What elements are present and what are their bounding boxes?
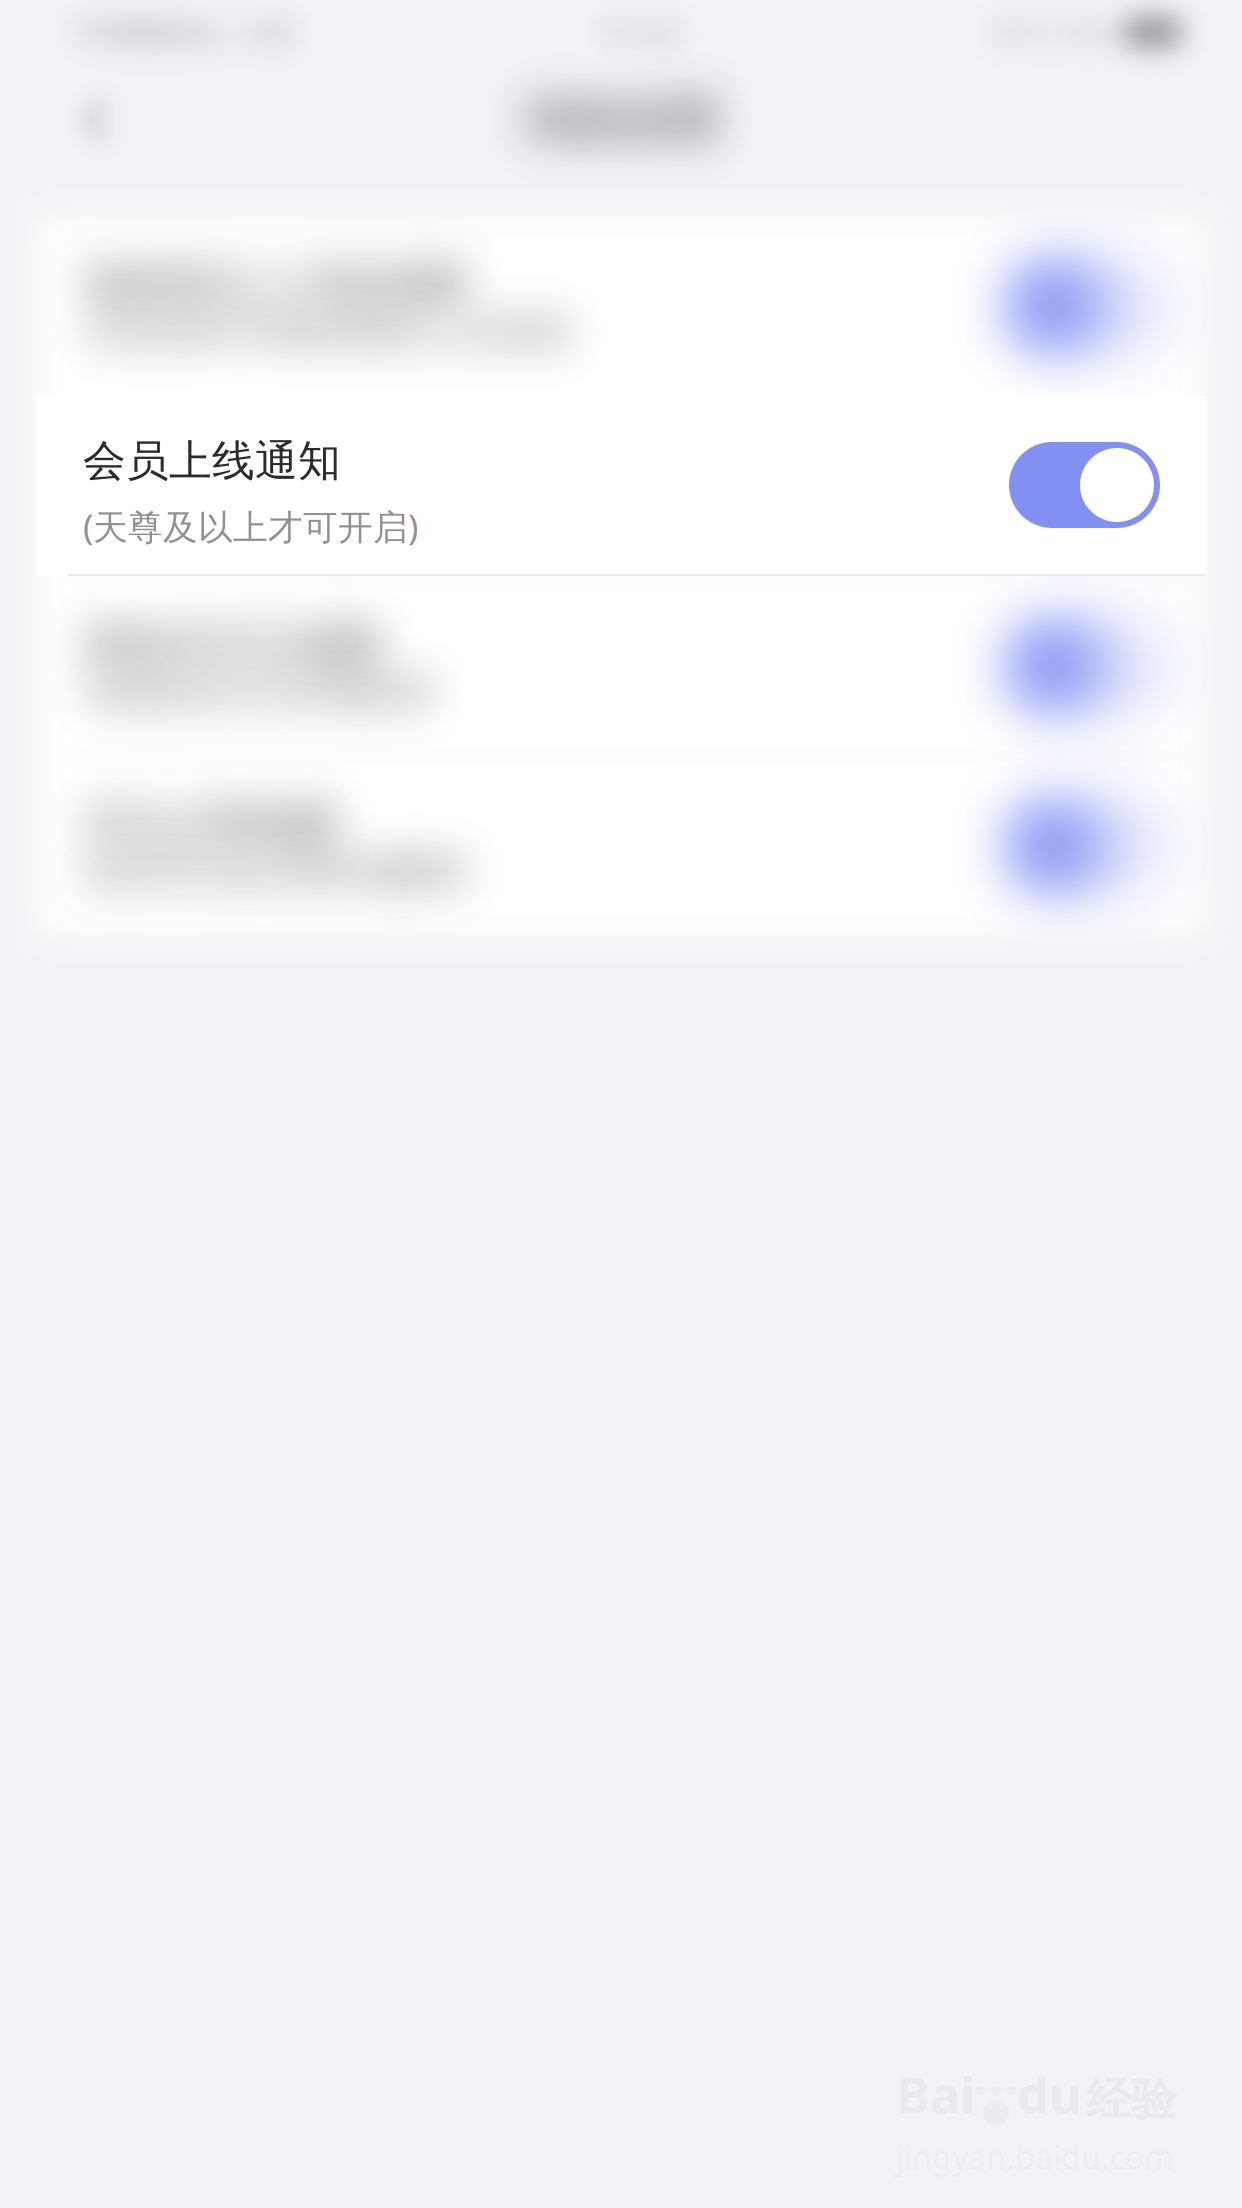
staticText: 会员上线通知 bbox=[83, 435, 341, 487]
staticText: 新粉丝关注提醒 bbox=[83, 451, 384, 504]
staticText: 接收陌生人消息提醒 bbox=[83, 91, 470, 144]
staticText: du bbox=[1017, 2060, 1082, 2127]
staticText: Bai bbox=[896, 2060, 975, 2127]
staticText: 经验 bbox=[1086, 2072, 1176, 2127]
staticText: 有新粉丝关注时通知我 bbox=[83, 512, 433, 555]
staticText: 收到评论或点赞时提醒我 bbox=[83, 692, 468, 735]
button[interactable]: Back bbox=[48, 78, 144, 162]
staticText: 评论点赞提醒 bbox=[83, 631, 341, 684]
button[interactable]: 会员上线通知 bbox=[36, 396, 1206, 576]
staticText: (天尊及以上才可开启) bbox=[83, 503, 418, 549]
